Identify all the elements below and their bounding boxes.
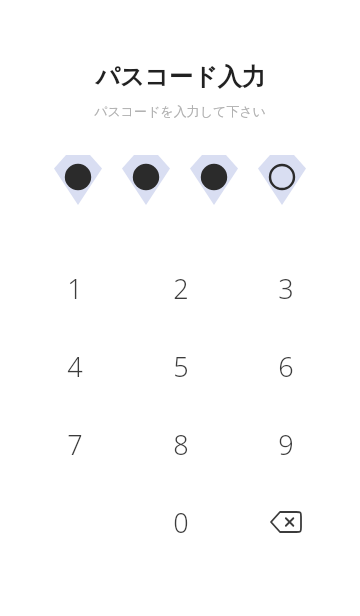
staticText: 5 (173, 348, 189, 385)
button[interactable]: 8 (128, 405, 233, 483)
staticText: 1 (67, 270, 83, 307)
staticText: 2 (173, 270, 189, 307)
button[interactable]: 9 (233, 405, 338, 483)
button[interactable]: 4 (22, 327, 128, 405)
staticText: 9 (278, 426, 294, 463)
staticText: パスコードを入力して下さい (94, 103, 266, 119)
button[interactable]: 6 (233, 327, 338, 405)
staticText: パスコード入力 (95, 62, 266, 92)
button[interactable]: 3 (233, 249, 338, 327)
button[interactable]: 2 (128, 249, 233, 327)
staticText: 6 (278, 348, 294, 385)
button[interactable]: 1 (22, 249, 128, 327)
button[interactable]: Backspace (233, 483, 338, 561)
button[interactable]: 0 (128, 483, 233, 561)
button[interactable]: 7 (22, 405, 128, 483)
button[interactable]: 5 (128, 327, 233, 405)
staticText: 0 (173, 504, 189, 541)
staticText: 7 (67, 426, 83, 463)
staticText: 4 (67, 348, 83, 385)
staticText: 8 (173, 426, 189, 463)
staticText: 3 (278, 270, 294, 307)
